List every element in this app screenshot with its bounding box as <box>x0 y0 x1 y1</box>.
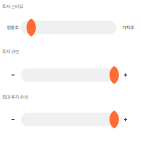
staticText: 투자 규모 <box>2 48 19 55</box>
staticText: 최대 투자 손실 <box>2 93 28 100</box>
button[interactable]: Decrease investment size <box>7 66 18 84</box>
button[interactable]: 성장주 <box>0 18 141 36</box>
button[interactable]: Increase investment size <box>120 66 131 84</box>
staticText: 성장주 <box>6 24 18 31</box>
staticText: 가치주 <box>122 24 134 31</box>
button[interactable]: Increase maximum loss <box>120 110 131 128</box>
staticText: 투자 스타일 <box>2 3 23 10</box>
button[interactable]: Decrease maximum loss <box>7 110 18 128</box>
